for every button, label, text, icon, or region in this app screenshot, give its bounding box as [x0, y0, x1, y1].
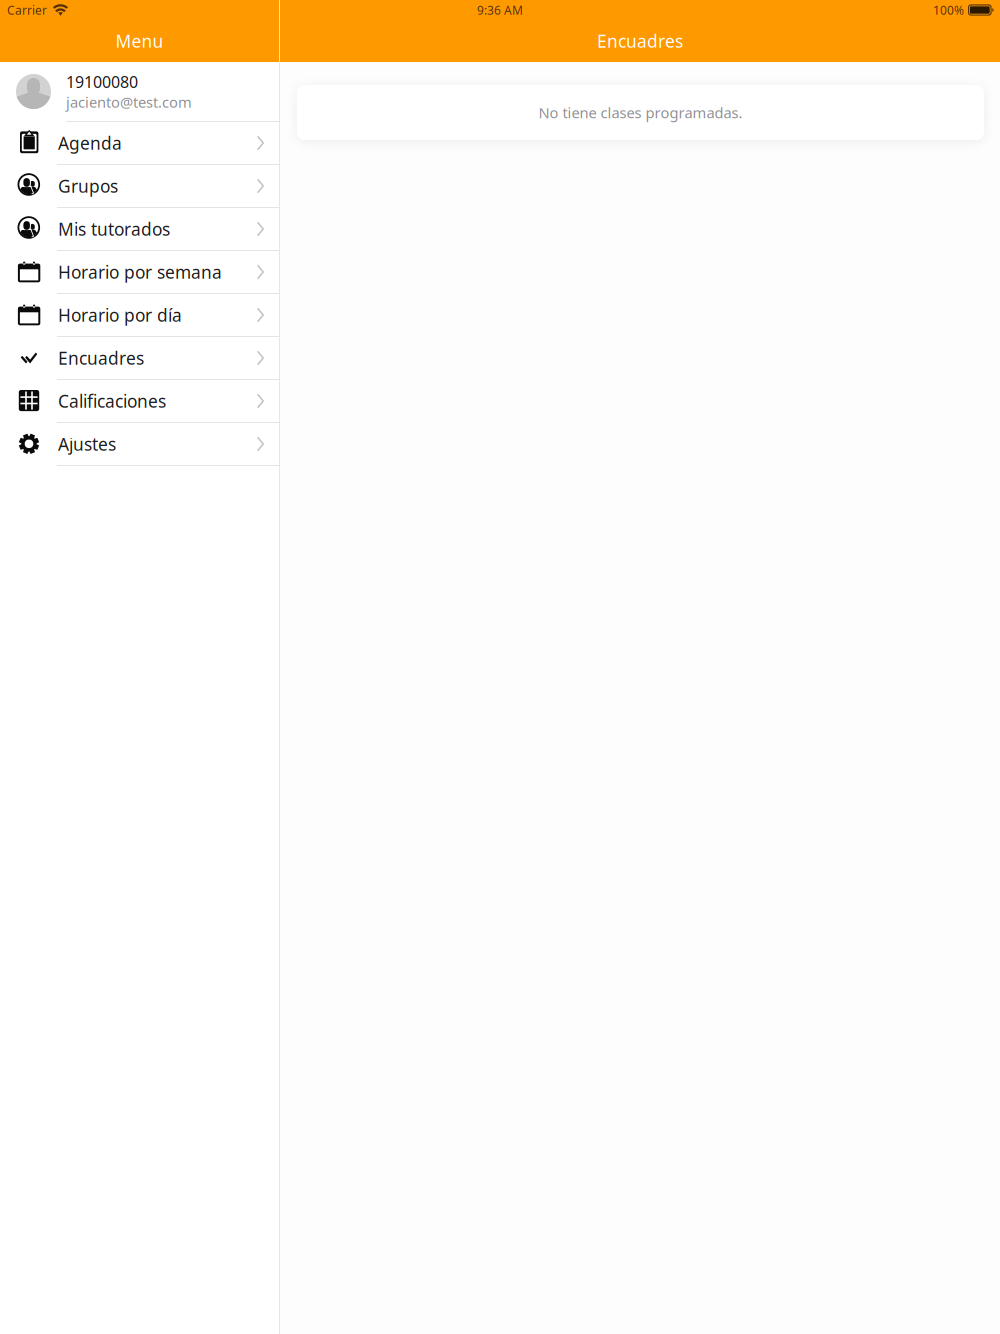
- staticText: Grupos: [58, 174, 118, 197]
- staticText: No tiene clases programadas.: [538, 103, 742, 122]
- staticText: Menu: [115, 29, 163, 52]
- button[interactable]: Agenda: [0, 122, 279, 165]
- button[interactable]: Horario por día: [0, 294, 279, 337]
- staticText: 9:36 AM: [477, 2, 523, 18]
- staticText: Mis tutorados: [58, 217, 170, 240]
- button[interactable]: Encuadres: [0, 337, 279, 380]
- staticText: Encuadres: [597, 29, 683, 52]
- button[interactable]: Ajustes: [0, 423, 279, 466]
- staticText: jaciento@test.com: [66, 92, 192, 112]
- staticText: Horario por semana: [58, 260, 222, 283]
- staticText: Carrier: [7, 2, 47, 18]
- staticText: 100%: [933, 2, 964, 18]
- button[interactable]: Horario por semana: [0, 251, 279, 294]
- staticText: Agenda: [58, 131, 122, 154]
- button[interactable]: Calificaciones: [0, 380, 279, 423]
- button[interactable]: 19100080: [0, 62, 279, 122]
- staticText: Encuadres: [58, 346, 144, 369]
- button[interactable]: Mis tutorados: [0, 208, 279, 251]
- button[interactable]: Grupos: [0, 165, 279, 208]
- staticText: Ajustes: [58, 432, 116, 455]
- staticText: Calificaciones: [58, 389, 166, 412]
- staticText: 19100080: [66, 71, 138, 92]
- staticText: Horario por día: [58, 303, 182, 326]
